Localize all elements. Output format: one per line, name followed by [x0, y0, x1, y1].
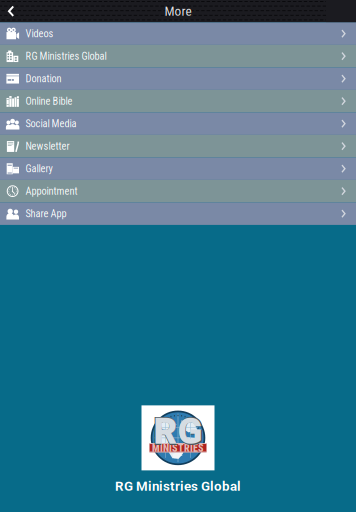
staticText: RG Ministries Global: [115, 478, 241, 494]
staticText: Appointment: [26, 185, 78, 197]
staticText: Donation: [26, 73, 62, 85]
staticText: More: [164, 3, 191, 19]
staticText: Gallery: [26, 163, 53, 175]
button[interactable]: Donation: [0, 67, 356, 90]
button[interactable]: Back: [0, 0, 30, 22]
staticText: Newsletter: [26, 140, 70, 152]
button[interactable]: Gallery: [0, 157, 356, 180]
staticText: Social Media: [26, 118, 77, 130]
button[interactable]: Appointment: [0, 180, 356, 202]
button[interactable]: Videos: [0, 22, 356, 45]
button[interactable]: RG Ministries Global: [0, 45, 356, 67]
staticText: Share App: [26, 208, 67, 220]
staticText: MINISTRIES: [152, 442, 204, 454]
button[interactable]: Newsletter: [0, 135, 356, 157]
button[interactable]: Share App: [0, 202, 356, 225]
button[interactable]: Online Bible: [0, 90, 356, 112]
staticText: RG: [153, 410, 202, 453]
staticText: RG Ministries Global: [26, 50, 107, 62]
button[interactable]: Social Media: [0, 112, 356, 135]
staticText: Videos: [26, 28, 54, 40]
staticText: RG: [152, 409, 203, 454]
staticText: Online Bible: [26, 95, 73, 107]
